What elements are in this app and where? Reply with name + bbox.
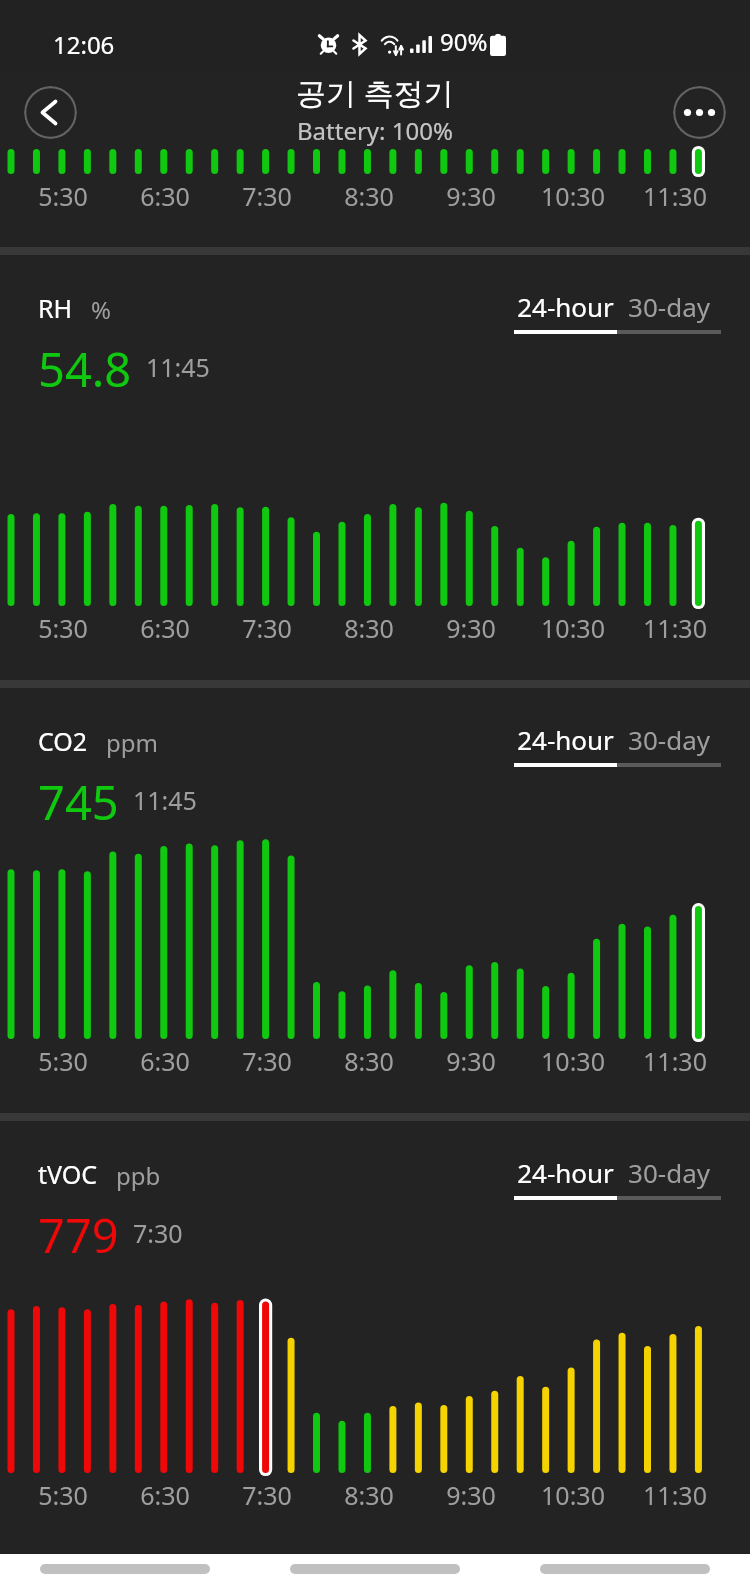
staticText: 5:30: [13, 1044, 113, 1078]
button[interactable]: 30-day: [617, 289, 721, 334]
staticText: 11:30: [625, 1478, 725, 1512]
staticText: 8:30: [319, 1478, 419, 1512]
staticText: 10:30: [523, 1478, 623, 1512]
button[interactable]: Navigation: [540, 1564, 710, 1574]
staticText: %: [91, 293, 111, 326]
staticText: 5:30: [13, 179, 113, 213]
staticText: 30-day: [617, 722, 721, 757]
staticText: 24-hour: [514, 1155, 617, 1190]
staticText: 779: [38, 1203, 119, 1267]
button[interactable]: Back: [24, 86, 77, 139]
staticText: 24-hour: [514, 289, 617, 324]
staticText: 11:30: [625, 179, 725, 213]
staticText: 7:30: [133, 1216, 183, 1250]
staticText: ppb: [116, 1159, 161, 1192]
staticText: 54.8: [38, 337, 132, 401]
staticText: 10:30: [523, 1044, 623, 1078]
button[interactable]: Navigation: [40, 1564, 210, 1574]
button[interactable]: Navigation: [290, 1564, 460, 1574]
staticText: 6:30: [115, 1478, 215, 1512]
button[interactable]: 30-day: [617, 722, 721, 767]
staticText: 12:06: [53, 28, 115, 61]
staticText: 10:30: [523, 611, 623, 645]
staticText: 10:30: [523, 179, 623, 213]
button[interactable]: 24-hour: [514, 722, 617, 767]
staticText: 7:30: [217, 179, 317, 213]
staticText: 6:30: [115, 1044, 215, 1078]
staticText: 11:45: [146, 350, 210, 384]
button[interactable]: 24-hour: [514, 289, 617, 334]
staticText: 9:30: [421, 1044, 521, 1078]
staticText: 11:45: [133, 783, 197, 817]
staticText: 6:30: [115, 179, 215, 213]
staticText: 11:30: [625, 611, 725, 645]
staticText: 745: [38, 770, 119, 834]
button[interactable]: 30-day: [617, 1155, 721, 1200]
staticText: 5:30: [13, 611, 113, 645]
staticText: 9:30: [421, 179, 521, 213]
staticText: 8:30: [319, 179, 419, 213]
staticText: 90%: [440, 25, 488, 58]
staticText: 7:30: [217, 1044, 317, 1078]
staticText: RH: [38, 291, 73, 325]
staticText: 5:30: [13, 1478, 113, 1512]
staticText: CO2: [38, 724, 88, 758]
staticText: 7:30: [217, 611, 317, 645]
staticText: 9:30: [421, 611, 521, 645]
staticText: 30-day: [617, 289, 721, 324]
button[interactable]: More options: [673, 86, 726, 139]
staticText: 8:30: [319, 1044, 419, 1078]
staticText: 24-hour: [514, 722, 617, 757]
staticText: tVOC: [38, 1157, 98, 1191]
staticText: 9:30: [421, 1478, 521, 1512]
staticText: 공기 측정기: [296, 72, 454, 113]
staticText: ppm: [106, 726, 158, 759]
staticText: 11:30: [625, 1044, 725, 1078]
staticText: 8:30: [319, 611, 419, 645]
staticText: 7:30: [217, 1478, 317, 1512]
staticText: Battery: 100%: [297, 114, 453, 147]
staticText: 30-day: [617, 1155, 721, 1190]
staticText: 6:30: [115, 611, 215, 645]
button[interactable]: 24-hour: [514, 1155, 617, 1200]
